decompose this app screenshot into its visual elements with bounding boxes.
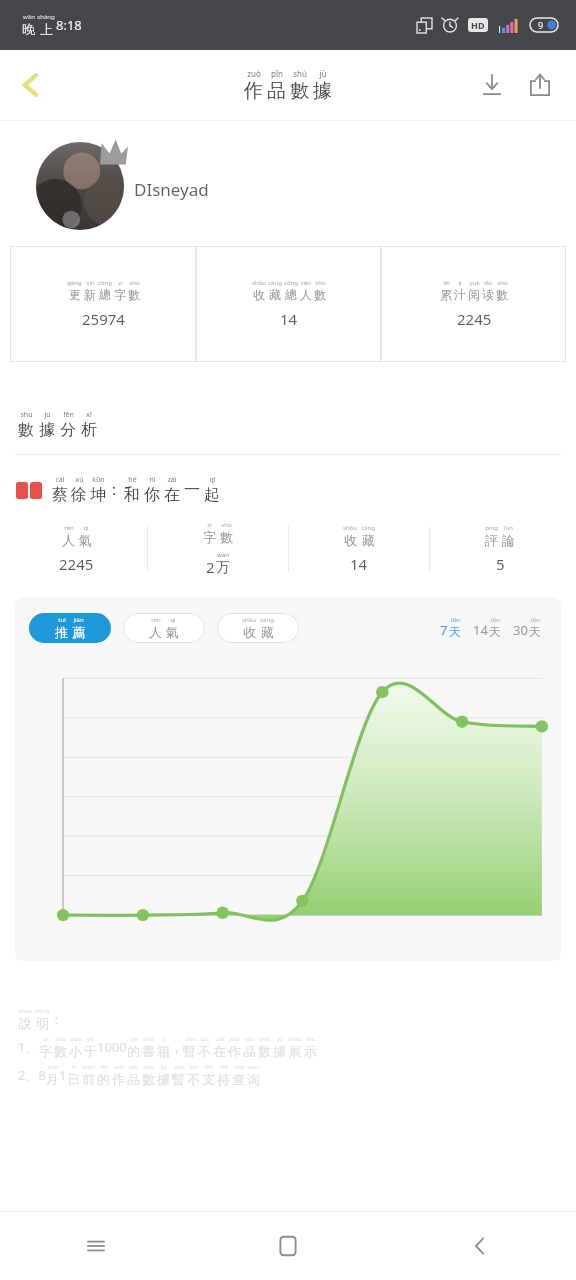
staticText: 5: [496, 554, 505, 574]
staticText: 和: [124, 485, 140, 505]
staticText: rén: [151, 616, 161, 624]
staticText: 累: [440, 287, 452, 302]
staticText: 坤: [90, 485, 106, 505]
staticText: 收: [253, 287, 265, 302]
staticText: 支: [202, 1071, 215, 1087]
staticText: 氣: [166, 624, 179, 640]
staticText: 小: [69, 1043, 82, 1059]
staticText: 天: [449, 624, 461, 639]
staticText: pǐn: [245, 1035, 254, 1043]
staticText: zhǎn: [288, 1035, 302, 1043]
staticText: rén: [64, 524, 74, 532]
staticText: shù: [20, 410, 33, 420]
staticText: 收: [243, 624, 256, 640]
staticText: yuè: [469, 279, 480, 287]
staticText: 8:18: [56, 16, 82, 34]
staticText: 月: [46, 1071, 59, 1087]
staticText: jù: [277, 1035, 283, 1043]
staticText: wàn: [217, 551, 229, 559]
button[interactable]: shōu: [289, 524, 429, 574]
staticText: shù: [497, 279, 508, 287]
staticText: 2245: [457, 309, 492, 329]
button[interactable]: zì: [148, 521, 288, 577]
staticText: jù: [319, 68, 327, 79]
staticText: zàn: [174, 1063, 184, 1071]
staticText: pǐn: [129, 1063, 138, 1071]
button[interactable]: shōu: [196, 246, 381, 362]
staticText: tiān: [491, 617, 500, 624]
button[interactable]: 30: [513, 617, 541, 639]
button[interactable]: cài: [16, 475, 576, 505]
staticText: zài: [167, 475, 177, 485]
staticText: shù: [315, 279, 326, 287]
staticText: 新: [84, 287, 96, 302]
staticText: 你: [144, 485, 160, 505]
staticText: shù: [129, 279, 140, 287]
button[interactable]: 7: [440, 617, 461, 639]
staticText: 數: [128, 287, 140, 302]
button[interactable]: 14: [473, 617, 501, 639]
staticText: 1: [59, 1066, 67, 1084]
staticText: 于: [84, 1043, 97, 1059]
staticText: xú: [75, 475, 84, 485]
button[interactable]: Back: [8, 62, 54, 108]
staticText: chí: [219, 1063, 228, 1071]
staticText: wǎn: [23, 13, 35, 21]
staticText: nǐ: [149, 475, 156, 485]
button[interactable]: rén: [6, 524, 147, 574]
button[interactable]: shōu: [217, 613, 299, 643]
button[interactable]: Back: [384, 1212, 576, 1280]
staticText: 万: [216, 559, 230, 577]
staticText: 品: [243, 1043, 256, 1059]
staticText: cáng: [361, 524, 375, 532]
staticText: 數: [220, 529, 233, 545]
staticText: xī: [86, 410, 92, 420]
staticText: 蔡: [52, 485, 68, 505]
staticText: 藏: [362, 532, 375, 548]
staticText: 字: [114, 287, 126, 302]
button[interactable]: Recents: [0, 1212, 192, 1280]
staticText: shōu: [242, 616, 256, 624]
staticText: 分: [60, 420, 76, 440]
staticText: cáng: [268, 279, 282, 287]
staticText: ：: [50, 1011, 63, 1027]
button[interactable]: Share: [518, 63, 562, 107]
staticText: zǒng: [284, 279, 298, 287]
button[interactable]: píng: [430, 524, 570, 574]
staticText: 人: [62, 532, 75, 548]
staticText: 30: [513, 621, 528, 639]
staticText: 在: [213, 1043, 226, 1059]
staticText: 7: [440, 621, 448, 639]
staticText: lěi: [443, 279, 450, 287]
staticText: 說: [19, 1015, 32, 1031]
staticText: shū: [143, 1035, 154, 1043]
staticText: zì: [207, 521, 212, 529]
button[interactable]: gèng: [10, 246, 196, 362]
staticText: 數: [142, 1071, 155, 1087]
staticText: jiàn: [73, 616, 84, 624]
staticText: 汁: [454, 287, 466, 302]
staticText: de: [100, 1063, 108, 1071]
staticText: 读: [482, 287, 494, 302]
staticText: zhī: [204, 1063, 213, 1071]
staticText: 天: [529, 624, 541, 639]
button[interactable]: tuī: [29, 613, 111, 643]
staticText: shù: [55, 1035, 66, 1043]
staticText: 收: [344, 532, 357, 548]
staticText: 總: [285, 287, 297, 302]
staticText: bù: [190, 1063, 198, 1071]
staticText: 不: [198, 1043, 211, 1059]
staticText: qǐ: [209, 475, 216, 485]
staticText: 品: [267, 79, 286, 103]
button[interactable]: lěi: [381, 246, 566, 362]
button[interactable]: Download: [470, 63, 514, 107]
staticText: qián: [82, 1063, 95, 1071]
button[interactable]: rén: [123, 613, 205, 643]
button[interactable]: Home: [192, 1212, 384, 1280]
staticText: 明: [36, 1015, 49, 1031]
staticText: zuò: [113, 1063, 124, 1071]
staticText: 數: [496, 287, 508, 302]
staticText: 人: [300, 287, 312, 302]
staticText: ：: [106, 480, 122, 500]
staticText: 2245: [59, 554, 94, 574]
